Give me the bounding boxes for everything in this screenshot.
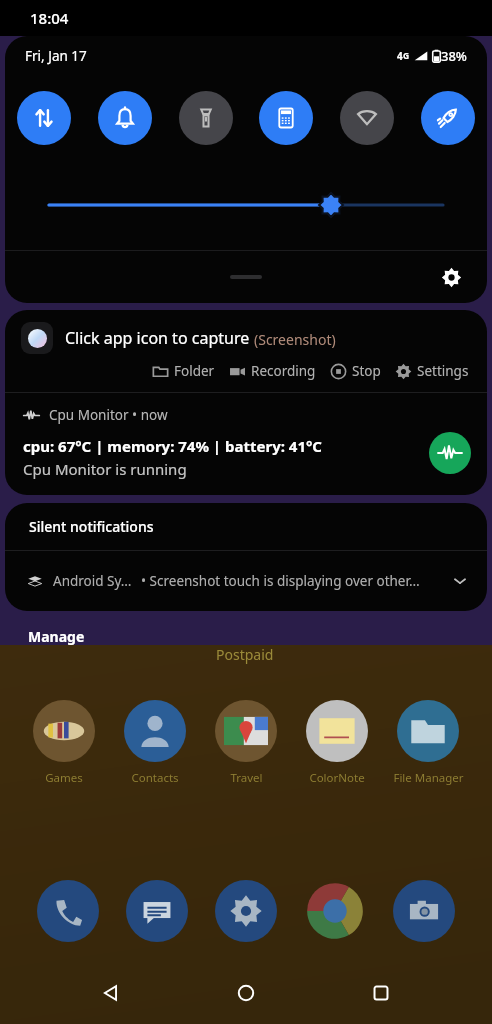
button[interactable]: File Manager xyxy=(391,700,465,786)
staticText: Fri, Jan 17 xyxy=(25,47,87,65)
button[interactable]: Folder xyxy=(150,360,217,382)
button[interactable]: Travel xyxy=(209,700,283,786)
staticText: Cpu Monitor • now xyxy=(49,406,168,424)
staticText: Folder xyxy=(174,362,215,380)
staticText: Travel xyxy=(230,770,263,786)
staticText: Click app icon to capture xyxy=(65,327,254,349)
button[interactable]: Cpu Monitor • now xyxy=(5,393,487,495)
staticText: Manage xyxy=(28,627,85,646)
staticText: 38% xyxy=(441,47,467,65)
button[interactable]: Settings xyxy=(215,880,277,942)
button[interactable]: Stop xyxy=(328,360,383,382)
button[interactable]: ColorNote xyxy=(300,700,374,786)
staticText: Cpu Monitor is running xyxy=(23,459,187,479)
button[interactable]: Contacts xyxy=(118,700,192,786)
button[interactable]: Mobile data xyxy=(17,91,71,145)
button[interactable]: Notifications xyxy=(98,91,152,145)
button[interactable]: Boost xyxy=(421,91,475,145)
button[interactable]: Camera xyxy=(393,880,455,942)
button[interactable]: Wi-Fi xyxy=(340,91,394,145)
button[interactable]: Home xyxy=(222,969,270,1017)
staticText: 18:04 xyxy=(30,8,69,28)
button[interactable]: Click app icon to capture xyxy=(5,310,487,392)
button[interactable]: Flashlight xyxy=(179,91,233,145)
staticText: File Manager xyxy=(393,770,464,786)
button[interactable]: Calculator xyxy=(259,91,313,145)
staticText: Recording xyxy=(251,362,316,380)
button[interactable]: Brightness xyxy=(5,160,487,250)
button[interactable]: Settings xyxy=(433,259,469,295)
button[interactable]: Recording xyxy=(227,360,318,382)
staticText: Games xyxy=(45,770,83,786)
button[interactable]: Settings xyxy=(393,360,471,382)
staticText: Stop xyxy=(352,362,381,380)
button[interactable]: Recent apps xyxy=(357,969,405,1017)
button[interactable]: Android Sy… xyxy=(5,551,487,611)
staticText: cpu: 67°C | memory: 74% | battery: 41°C xyxy=(23,436,322,456)
staticText: ColorNote xyxy=(309,770,365,786)
button[interactable]: Manage xyxy=(24,625,89,648)
button[interactable]: Games xyxy=(27,700,101,786)
staticText: Settings xyxy=(417,362,469,380)
staticText: (Screenshot) xyxy=(254,330,336,349)
button[interactable]: Messages xyxy=(126,880,188,942)
staticText: • Screenshot touch is displaying over ot… xyxy=(141,572,420,590)
staticText: Postpaid xyxy=(216,645,274,664)
staticText: G xyxy=(403,50,410,62)
staticText: Contacts xyxy=(131,770,179,786)
button[interactable]: Back xyxy=(87,969,135,1017)
staticText: Silent notifications xyxy=(29,517,154,536)
button[interactable]: Chrome xyxy=(304,880,366,942)
staticText: 4 xyxy=(397,49,403,63)
button[interactable]: Phone xyxy=(37,880,99,942)
staticText: Android Sy… xyxy=(53,572,132,590)
